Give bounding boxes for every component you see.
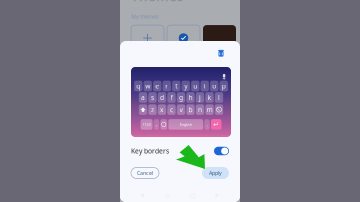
staticText: a xyxy=(141,93,145,102)
staticText: k xyxy=(207,93,211,102)
staticText: z xyxy=(151,105,154,114)
staticText: v xyxy=(179,105,182,114)
staticText: f xyxy=(170,93,172,102)
staticText: s xyxy=(151,93,154,102)
staticText: h xyxy=(188,93,192,102)
staticText: Cancel xyxy=(137,169,153,177)
staticText: y xyxy=(184,82,187,90)
staticText: , xyxy=(156,121,157,128)
button[interactable]: Delete theme xyxy=(214,46,228,60)
staticText: t xyxy=(175,82,177,90)
staticText: c xyxy=(170,105,173,114)
staticText: i xyxy=(204,82,206,90)
staticText: d xyxy=(160,93,164,102)
staticText: l xyxy=(218,93,220,102)
staticText: u xyxy=(193,82,197,90)
button[interactable]: Cancel xyxy=(131,167,159,178)
staticText: Key borders xyxy=(131,147,169,155)
staticText: ?123 xyxy=(143,122,151,127)
staticText: English xyxy=(180,122,192,127)
staticText: m xyxy=(206,105,212,114)
staticText: Apply xyxy=(209,169,222,177)
button[interactable]: Apply xyxy=(202,167,229,179)
staticText: Themes xyxy=(131,0,184,5)
button[interactable]: Key borders xyxy=(214,147,229,155)
staticText: o xyxy=(212,82,216,90)
staticText: w xyxy=(145,82,150,90)
staticText: j xyxy=(199,93,201,102)
staticText: n xyxy=(198,105,202,114)
staticText: x xyxy=(160,105,164,114)
staticText: q xyxy=(136,82,140,90)
staticText: . xyxy=(207,121,208,128)
staticText: ↵ xyxy=(213,121,219,128)
staticText: g xyxy=(179,93,183,102)
staticText: e xyxy=(155,82,159,90)
staticText: p xyxy=(222,82,226,90)
staticText: r xyxy=(165,82,168,90)
staticText: My themes xyxy=(131,13,159,20)
staticText: b xyxy=(188,105,192,114)
